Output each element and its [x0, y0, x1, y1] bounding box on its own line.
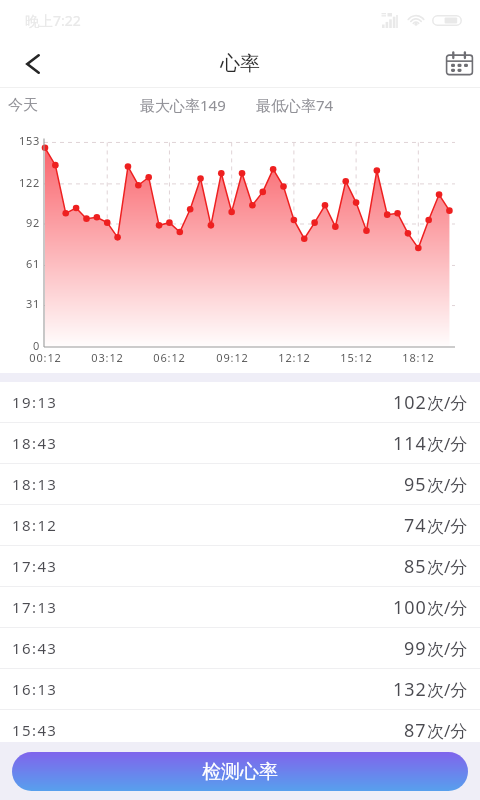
button[interactable]: Calendar — [437, 40, 480, 87]
button[interactable]: 18:43 — [0, 423, 480, 463]
staticText: 15:43 — [12, 720, 58, 740]
staticText: 晚上7:22 — [25, 11, 81, 30]
button[interactable]: 16:13 — [0, 669, 480, 709]
staticText: 61 — [26, 256, 40, 271]
staticText: 19:13 — [12, 392, 58, 412]
staticText: 次/分 — [427, 719, 468, 742]
staticText: 102 — [393, 390, 427, 415]
staticText: 122 — [19, 175, 40, 190]
staticText: 0 — [33, 338, 40, 353]
button[interactable]: 18:13 — [0, 464, 480, 504]
staticText: 06:12 — [153, 350, 186, 365]
staticText: 最低心率74 — [256, 95, 334, 115]
staticText: 18:12 — [12, 515, 58, 535]
staticText: 检测心率 — [202, 760, 278, 784]
button[interactable]: Back — [9, 40, 57, 87]
staticText: 次/分 — [427, 596, 468, 619]
staticText: 12:12 — [278, 350, 311, 365]
staticText: 100 — [393, 595, 427, 620]
button[interactable]: 16:43 — [0, 628, 480, 668]
staticText: 74 — [404, 513, 427, 538]
staticText: 最大心率149 — [140, 95, 226, 115]
button[interactable]: 17:43 — [0, 546, 480, 586]
staticText: 132 — [393, 677, 427, 702]
staticText: 92 — [26, 215, 40, 230]
staticText: 17:43 — [12, 556, 58, 576]
button[interactable]: 15:43 — [0, 710, 480, 750]
staticText: 87 — [404, 718, 427, 743]
staticText: 次/分 — [427, 678, 468, 701]
staticText: 次/分 — [427, 637, 468, 660]
staticText: 95 — [404, 472, 427, 497]
staticText: 18:13 — [12, 474, 58, 494]
staticText: 次/分 — [427, 555, 468, 578]
staticText: 17:13 — [12, 597, 58, 617]
button[interactable]: 19:13 — [0, 382, 480, 422]
staticText: 00:12 — [29, 350, 62, 365]
button[interactable]: 17:13 — [0, 587, 480, 627]
staticText: 心率 — [220, 51, 260, 76]
button[interactable]: 检测心率 — [12, 752, 468, 791]
staticText: 次/分 — [427, 473, 468, 496]
staticText: 次/分 — [427, 514, 468, 537]
staticText: 18:43 — [12, 433, 58, 453]
staticText: 今天 — [8, 96, 38, 115]
staticText: 03:12 — [91, 350, 124, 365]
staticText: 次/分 — [427, 432, 468, 455]
staticText: 85 — [404, 554, 427, 579]
staticText: 99 — [404, 636, 427, 661]
staticText: 153 — [19, 133, 40, 148]
staticText: 次/分 — [427, 391, 468, 414]
staticText: 18:12 — [402, 350, 435, 365]
staticText: 16:13 — [12, 679, 58, 699]
staticText: 09:12 — [216, 350, 249, 365]
staticText: 114 — [393, 431, 427, 456]
staticText: 31 — [26, 296, 40, 311]
staticText: 15:12 — [340, 350, 373, 365]
button[interactable]: 18:12 — [0, 505, 480, 545]
staticText: 16:43 — [12, 638, 58, 658]
